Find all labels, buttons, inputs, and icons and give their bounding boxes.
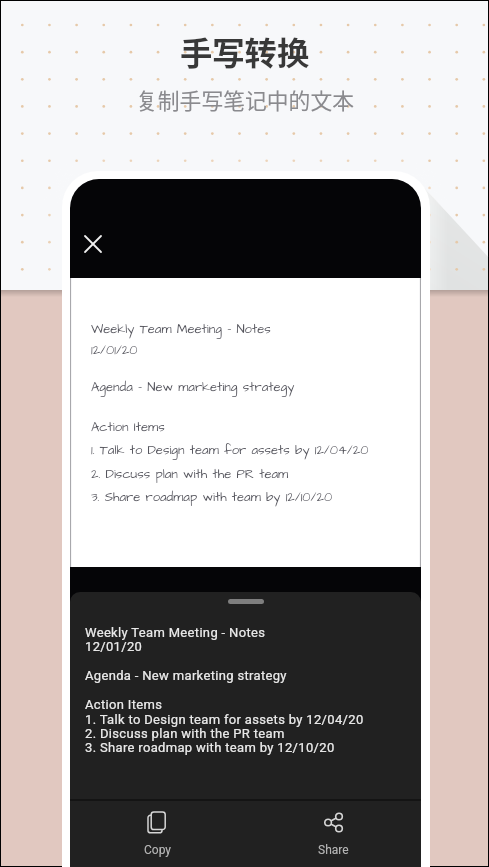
staticText: 手写转换	[180, 28, 310, 75]
staticText: Action Items	[91, 418, 165, 436]
staticText: Agenda - New marketing strategy	[91, 378, 295, 396]
button[interactable]: Close	[73, 224, 113, 264]
staticText: Weekly Team Meeting - Notes	[85, 625, 266, 640]
staticText: Share	[318, 843, 349, 857]
button[interactable]: Copy	[110, 800, 206, 867]
staticText: 2. Discuss plan with the PR team	[85, 726, 285, 741]
button[interactable]: Share	[284, 800, 383, 867]
staticText: Copy	[144, 843, 172, 857]
staticText: 2. Discuss plan with the PR team	[91, 465, 289, 483]
staticText: 12/01/20	[85, 639, 143, 654]
staticText: Action Items	[85, 697, 163, 712]
staticText: 3. Share roadmap with team by 12/10/20	[91, 488, 333, 506]
staticText: 1. Talk to Design team for assets by 12/…	[91, 441, 369, 459]
button[interactable]: Drag handle	[70, 592, 421, 610]
staticText: Agenda - New marketing strategy	[85, 668, 287, 683]
staticText: 3. Share roadmap with team by 12/10/20	[85, 740, 335, 755]
staticText: 1. Talk to Design team for assets by 12/…	[85, 712, 364, 727]
staticText: Weekly Team Meeting - Notes	[91, 320, 271, 338]
staticText: 复制手写笔记中的文本	[136, 84, 354, 116]
staticText: 12/01/20	[91, 341, 138, 359]
